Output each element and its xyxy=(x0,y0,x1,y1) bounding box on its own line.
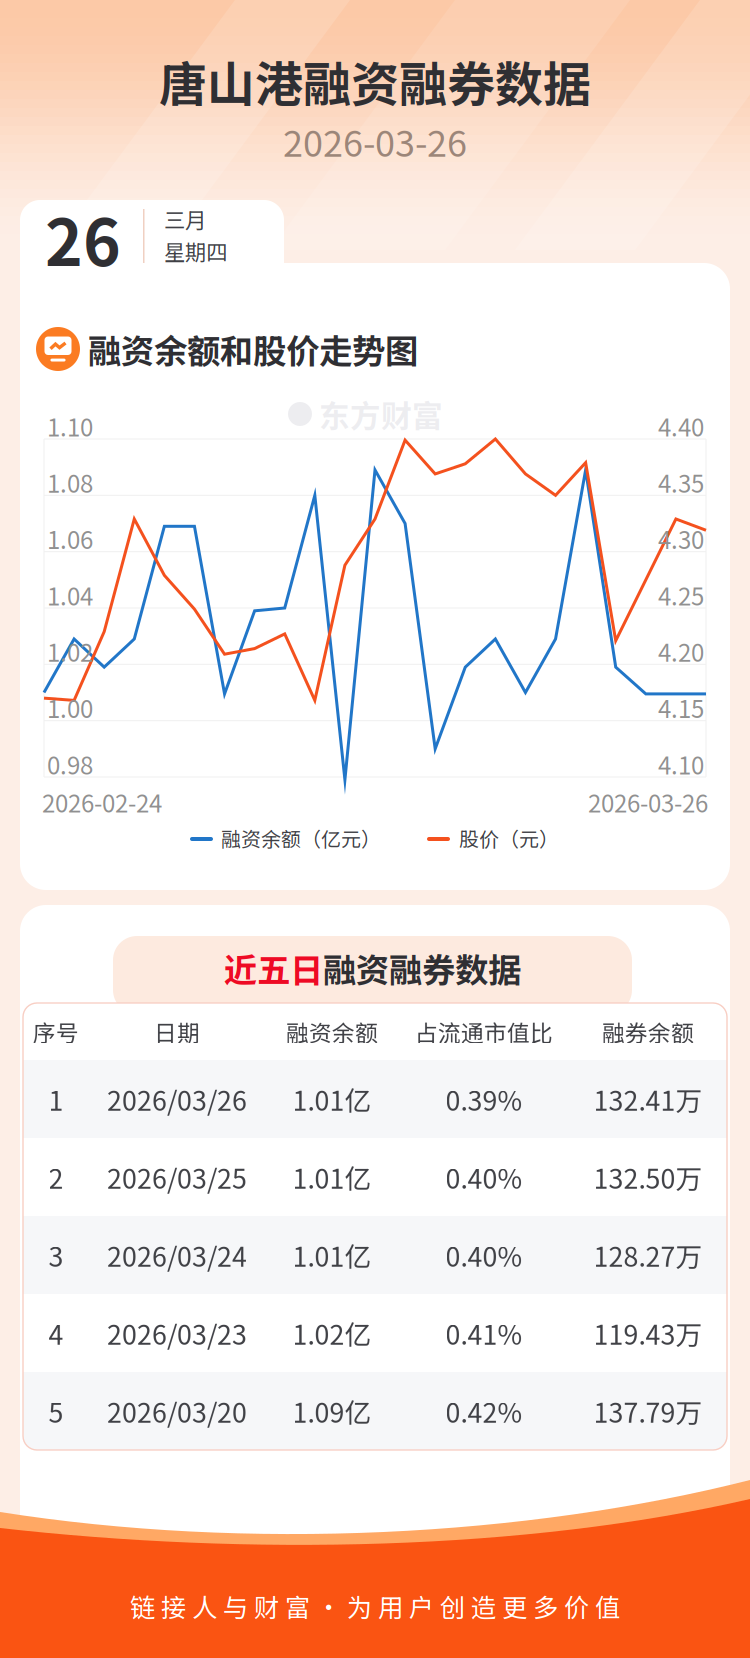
staticText: 1.10 xyxy=(47,409,93,443)
staticText: 4.40 xyxy=(658,409,704,443)
staticText: 近五日 xyxy=(224,944,323,992)
staticText: 2026/03/25 xyxy=(107,1158,247,1196)
button[interactable]: 3 xyxy=(23,1216,727,1294)
staticText: 链 接 人 与 财 富 · 为 用 户 创 造 更 多 价 值 xyxy=(130,1588,620,1624)
button[interactable]: 4 xyxy=(23,1294,727,1372)
staticText: 2026-03-26 xyxy=(588,785,708,819)
staticText: 2026-03-26 xyxy=(283,115,467,167)
staticText: 1.02亿 xyxy=(292,1314,371,1352)
staticText: 119.43万 xyxy=(593,1314,702,1352)
staticText: 1.08 xyxy=(47,465,93,500)
staticText: 4.20 xyxy=(658,634,704,669)
button[interactable]: 5 xyxy=(23,1372,727,1450)
staticText: 128.27万 xyxy=(593,1236,702,1274)
staticText: 唐山港融资融券数据 xyxy=(159,46,591,116)
staticText: 4.10 xyxy=(658,747,704,781)
staticText: 26 xyxy=(45,192,121,284)
staticText: 0.98 xyxy=(47,747,93,781)
staticText: 融资余额和股价走势图 xyxy=(88,325,418,373)
staticText: 2026/03/20 xyxy=(107,1392,247,1430)
staticText: 融资融券数据 xyxy=(323,944,521,992)
staticText: 序号 xyxy=(33,1015,79,1048)
staticText: 132.41万 xyxy=(593,1080,702,1118)
staticText: 1.02 xyxy=(47,634,93,669)
button[interactable]: 1 xyxy=(23,1060,727,1138)
staticText: 1.00 xyxy=(47,690,93,725)
staticText: 2026/03/23 xyxy=(107,1314,247,1352)
staticText: 4.30 xyxy=(658,521,704,556)
staticText: 0.41% xyxy=(445,1314,522,1352)
staticText: 1.06 xyxy=(47,521,93,556)
staticText: 0.39% xyxy=(445,1080,522,1118)
staticText: 东方财富 xyxy=(319,392,443,436)
staticText: 融资余额（亿元） xyxy=(221,823,381,852)
staticText: 1.01亿 xyxy=(292,1080,371,1118)
staticText: 4.25 xyxy=(658,578,704,612)
staticText: 1 xyxy=(48,1080,63,1118)
staticText: 股价（元） xyxy=(459,823,559,852)
staticText: 1.01亿 xyxy=(292,1158,371,1196)
staticText: 4.35 xyxy=(658,465,704,500)
staticText: 3 xyxy=(48,1236,63,1274)
button[interactable]: 2 xyxy=(23,1138,727,1216)
staticText: 融券余额 xyxy=(602,1015,694,1048)
staticText: 2026-02-24 xyxy=(42,785,162,819)
staticText: 0.40% xyxy=(445,1236,522,1274)
staticText: 1.01亿 xyxy=(292,1236,371,1274)
staticText: 4 xyxy=(48,1314,63,1352)
staticText: 星期四 xyxy=(164,236,227,266)
staticText: 4.15 xyxy=(658,690,704,725)
staticText: 融资余额 xyxy=(286,1015,378,1048)
staticText: 2026/03/26 xyxy=(107,1080,247,1118)
staticText: 三月 xyxy=(164,204,206,234)
staticText: 132.50万 xyxy=(593,1158,702,1196)
staticText: 占流通市值比 xyxy=(415,1015,553,1048)
staticText: 0.40% xyxy=(445,1158,522,1196)
staticText: 0.42% xyxy=(445,1392,522,1430)
staticText: 1.04 xyxy=(47,578,93,612)
staticText: 2026/03/24 xyxy=(107,1236,247,1274)
staticText: 137.79万 xyxy=(593,1392,702,1430)
staticText: 1.09亿 xyxy=(292,1392,371,1430)
staticText: 5 xyxy=(48,1392,63,1430)
staticText: 2 xyxy=(48,1158,63,1196)
staticText: 日期 xyxy=(154,1015,200,1048)
button[interactable]: 序号 xyxy=(23,1003,727,1060)
